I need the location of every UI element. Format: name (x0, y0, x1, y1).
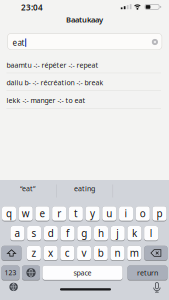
button[interactable]: r (52, 206, 66, 221)
button[interactable]: return (127, 265, 167, 281)
button[interactable]: g (77, 226, 91, 241)
button[interactable]: k (127, 226, 141, 241)
staticText: lekk -:- manger -:- to eat (6, 96, 85, 105)
staticText: eat (12, 37, 24, 48)
button[interactable]: 123 (1, 265, 19, 281)
staticText: z (31, 246, 36, 260)
button[interactable]: u (102, 206, 116, 221)
staticText: i (124, 207, 127, 220)
staticText: u (106, 207, 112, 220)
staticText: “eat” (20, 184, 36, 193)
button[interactable]: x (44, 246, 58, 261)
button[interactable]: b (94, 246, 108, 261)
staticText: b (98, 246, 104, 260)
button[interactable]: lekk -:- manger -:- to eat (0, 91, 169, 109)
staticText: space (73, 268, 91, 277)
staticText: d (48, 226, 54, 240)
staticText: e (39, 207, 45, 220)
button[interactable]: Shift (1, 246, 21, 261)
staticText: o (140, 207, 146, 220)
staticText: t (74, 207, 78, 220)
button[interactable]: h (94, 226, 108, 241)
button[interactable]: d (44, 226, 58, 241)
button[interactable]: o (136, 206, 150, 221)
button[interactable]: p (152, 206, 166, 221)
staticText: eating (74, 184, 95, 193)
button[interactable]: Next keyboard (22, 265, 40, 281)
staticText: s (32, 226, 37, 240)
staticText: q (6, 207, 12, 220)
button[interactable]: n (110, 246, 124, 261)
staticText: return (137, 268, 158, 277)
button[interactable]: y (86, 206, 100, 221)
staticText: x (48, 246, 53, 260)
button[interactable]: i (119, 206, 133, 221)
staticText: m (130, 246, 139, 260)
staticText: w (22, 207, 30, 220)
button[interactable]: a (10, 226, 24, 241)
staticText: k (132, 226, 137, 240)
button[interactable]: Switch keyboard (9, 283, 18, 291)
button[interactable]: Delete (144, 246, 167, 261)
button[interactable]: e (35, 206, 49, 221)
button[interactable]: “eat” (0, 183, 56, 194)
staticText: baamtu -:- répéter -:- repeat (6, 60, 98, 70)
staticText: v (82, 246, 87, 260)
staticText: l (150, 226, 153, 240)
staticText: g (81, 226, 87, 240)
staticText: n (114, 246, 120, 260)
button[interactable]: l (144, 226, 158, 241)
staticText: h (98, 226, 104, 240)
staticText: dallu b- -:- récréation -:- break (6, 78, 103, 87)
staticText: y (90, 207, 95, 220)
staticText: 123 (4, 268, 16, 277)
staticText: j (116, 226, 119, 240)
button[interactable]: dallu b- -:- récréation -:- break (0, 74, 169, 91)
button[interactable]: t (69, 206, 83, 221)
button[interactable]: z (27, 246, 41, 261)
button[interactable]: eat (7, 33, 162, 50)
staticText: a (14, 226, 20, 240)
button[interactable]: s (27, 226, 41, 241)
button[interactable]: baamtu -:- répéter -:- repeat (0, 56, 169, 74)
button[interactable]: q (2, 206, 16, 221)
button[interactable]: v (77, 246, 91, 261)
staticText: r (57, 207, 61, 220)
button[interactable]: w (19, 206, 33, 221)
staticText: Baatukaay (66, 14, 103, 25)
staticText: p (156, 207, 162, 220)
button[interactable]: j (111, 226, 125, 241)
button[interactable]: eating (56, 183, 112, 194)
button[interactable]: space (42, 265, 122, 281)
staticText: f (66, 226, 69, 240)
button[interactable]: Dictation (153, 282, 161, 293)
button[interactable]: m (127, 246, 141, 261)
staticText: c (65, 246, 70, 260)
staticText: 23:04 (21, 2, 43, 13)
button[interactable]: Clear text (152, 39, 158, 45)
button[interactable]: c (60, 246, 74, 261)
button[interactable]: f (61, 226, 75, 241)
